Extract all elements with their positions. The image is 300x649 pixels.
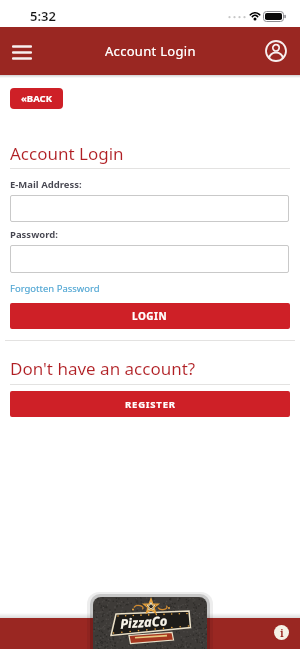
staticText: E-Mail Address: (10, 178, 82, 191)
staticText: PizzaCo (119, 611, 168, 633)
staticText: Password: (10, 228, 58, 241)
button[interactable]: Forgotten Password (10, 282, 100, 295)
button[interactable]: «BACK (10, 88, 63, 109)
button[interactable]: i (274, 625, 289, 640)
staticText: LOGIN (132, 309, 168, 323)
staticText: i (280, 625, 284, 640)
staticText: Don't have an account? (10, 357, 196, 380)
staticText: Account Login (10, 142, 124, 165)
button[interactable]: PizzaCo (93, 597, 207, 649)
staticText: 5:32 (30, 7, 56, 25)
staticText: REGISTER (125, 398, 176, 411)
staticText: Account Login (105, 42, 196, 60)
button[interactable] (8, 41, 36, 63)
button[interactable] (10, 245, 289, 273)
button[interactable] (10, 195, 289, 222)
button[interactable]: REGISTER (10, 391, 290, 417)
button[interactable]: LOGIN (10, 303, 290, 329)
staticText: «BACK (21, 92, 52, 105)
button[interactable] (263, 38, 289, 64)
